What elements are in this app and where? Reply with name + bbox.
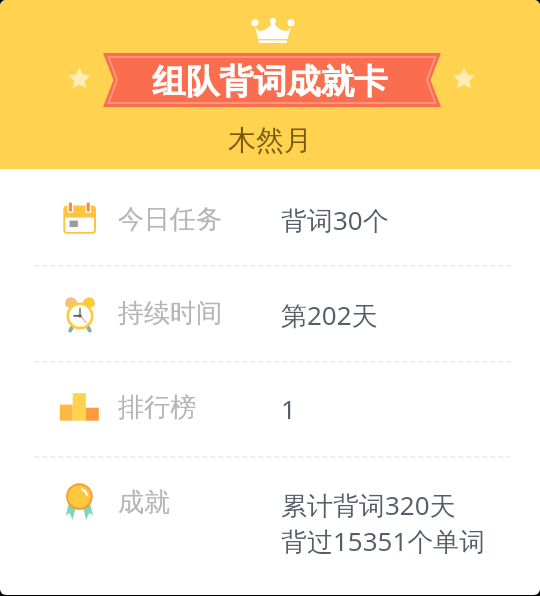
staticText: 背过15351个单词 <box>281 523 486 559</box>
staticText: 累计背词320天 <box>281 487 456 523</box>
other: 今日任务 <box>59 198 101 240</box>
staticText: 第202天 <box>281 297 378 333</box>
staticText: 持续时间 <box>118 297 222 330</box>
button[interactable]: 排行榜 <box>0 362 540 457</box>
other: 排行榜 <box>59 386 101 428</box>
staticText: 组队背词成就卡 <box>0 61 540 103</box>
staticText: 成就 <box>118 486 170 519</box>
other: 成就 <box>59 480 101 522</box>
button[interactable]: 持续时间 <box>0 266 540 362</box>
staticText: 排行榜 <box>118 391 196 424</box>
button[interactable]: 今日任务 <box>0 169 540 266</box>
staticText: 背词30个 <box>281 202 389 238</box>
other: 持续时间 <box>59 293 101 335</box>
staticText: 今日任务 <box>118 203 222 236</box>
staticText: 木然月 <box>0 123 540 158</box>
staticText: 1 <box>281 391 296 426</box>
button[interactable]: 成就 <box>0 457 540 595</box>
